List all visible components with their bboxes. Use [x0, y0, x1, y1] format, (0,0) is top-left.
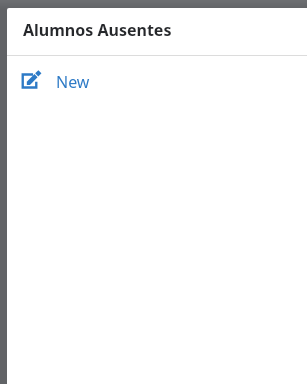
other: New — [19, 68, 43, 92]
button[interactable]: New — [7, 56, 307, 100]
staticText: Alumnos Ausentes — [23, 19, 172, 41]
staticText: New — [56, 71, 90, 93]
